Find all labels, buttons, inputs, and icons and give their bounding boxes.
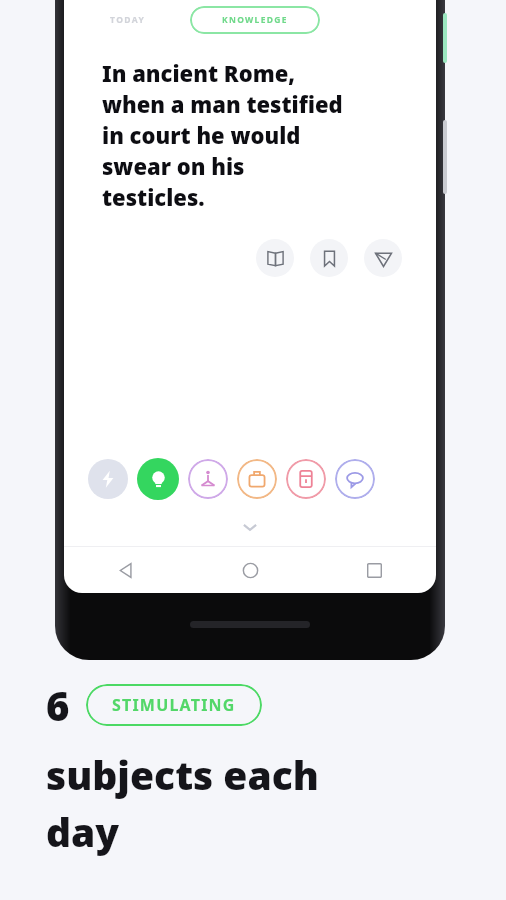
staticText: swear on his — [102, 151, 245, 181]
button[interactable]: Chat — [335, 459, 375, 499]
button[interactable]: TODAY — [106, 8, 150, 32]
button[interactable]: Work — [237, 459, 277, 499]
staticText: TODAY — [110, 14, 146, 26]
staticText: testicles. — [102, 182, 205, 212]
staticText: STIMULATING — [112, 694, 236, 716]
button[interactable]: Knowledge — [137, 458, 179, 500]
button[interactable]: Share — [364, 239, 402, 277]
button[interactable]: Show more — [233, 516, 267, 538]
staticText: in court he would — [102, 120, 301, 150]
button[interactable]: Energy — [88, 459, 128, 499]
button[interactable]: KNOWLEDGE — [190, 6, 320, 34]
button[interactable]: Reading — [286, 459, 326, 499]
button[interactable]: Recents — [312, 547, 436, 593]
button[interactable]: Read — [256, 239, 294, 277]
button[interactable]: Home — [188, 547, 312, 593]
staticText: In ancient Rome, — [102, 58, 296, 88]
button[interactable]: Bookmark — [310, 239, 348, 277]
staticText: 6 — [46, 678, 70, 732]
button[interactable]: Wellness — [188, 459, 228, 499]
staticText: subjects each — [46, 748, 319, 801]
staticText: day — [46, 805, 120, 858]
staticText: KNOWLEDGE — [222, 14, 288, 26]
staticText: when a man testified — [102, 89, 343, 119]
button[interactable]: Back — [64, 547, 188, 593]
button[interactable]: STIMULATING — [86, 684, 262, 726]
